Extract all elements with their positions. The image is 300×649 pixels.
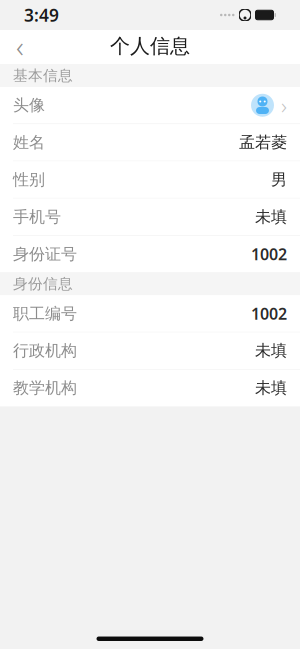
staticText: 身份证号: [13, 244, 77, 264]
button[interactable]: 身份证号: [0, 236, 300, 272]
staticText: 姓名: [13, 133, 45, 152]
staticText: 男: [271, 170, 287, 189]
staticText: 个人信息: [110, 34, 190, 58]
staticText: 行政机构: [13, 341, 77, 361]
staticText: 性别: [13, 170, 45, 189]
staticText: 1002: [251, 243, 287, 265]
button[interactable]: 姓名: [0, 124, 300, 161]
staticText: ›: [281, 90, 287, 120]
button[interactable]: 头像: [0, 87, 300, 123]
staticText: 基本信息: [13, 66, 73, 84]
staticText: 手机号: [13, 207, 61, 227]
button[interactable]: Back: [0, 30, 40, 62]
staticText: 1002: [251, 303, 287, 324]
button[interactable]: 教学机构: [0, 370, 300, 406]
staticText: 未填: [255, 378, 287, 398]
button[interactable]: 职工编号: [0, 295, 300, 332]
staticText: 头像: [13, 95, 45, 115]
button[interactable]: 性别: [0, 161, 300, 198]
staticText: 未填: [255, 207, 287, 227]
staticText: 职工编号: [13, 304, 77, 323]
button[interactable]: 行政机构: [0, 332, 300, 369]
staticText: 身份信息: [13, 275, 73, 293]
staticText: 3:49: [24, 3, 59, 26]
staticText: 未填: [255, 341, 287, 361]
staticText: 孟若菱: [239, 133, 287, 152]
staticText: 教学机构: [13, 378, 77, 398]
button[interactable]: 手机号: [0, 199, 300, 235]
staticText: ‹: [16, 26, 24, 65]
